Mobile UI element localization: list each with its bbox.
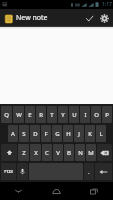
button[interactable]: L: [96, 125, 106, 142]
staticText: M: [88, 149, 94, 157]
button[interactable]: J: [74, 125, 84, 142]
button[interactable]: B: [64, 144, 74, 161]
button[interactable]: X: [30, 144, 41, 161]
button[interactable]: Z: [18, 144, 29, 161]
button[interactable]: R: [36, 106, 46, 123]
staticText: P: [105, 111, 109, 119]
staticText: F: [44, 130, 48, 138]
staticText: E: [28, 111, 32, 119]
staticText: ?123: [4, 169, 13, 174]
button[interactable]: Close keyboard: [0, 182, 37, 200]
staticText: K: [88, 130, 92, 138]
staticText: W: [16, 111, 22, 119]
button[interactable]: S: [19, 125, 29, 142]
staticText: R: [39, 111, 43, 119]
staticText: N: [78, 149, 83, 157]
button[interactable]: V: [53, 144, 63, 161]
button[interactable]: T: [47, 106, 57, 123]
button[interactable]: H: [63, 125, 73, 142]
button[interactable]: P: [102, 106, 112, 123]
staticText: Z: [22, 149, 26, 157]
staticText: L: [99, 130, 103, 138]
button[interactable]: E: [25, 106, 35, 123]
staticText: V: [56, 149, 60, 157]
staticText: G: [55, 130, 60, 138]
button[interactable]: ?123: [1, 163, 16, 180]
staticText: J: [78, 130, 80, 138]
button[interactable]: W: [13, 106, 24, 123]
button[interactable]: O: [91, 106, 101, 123]
staticText: Y: [61, 111, 65, 119]
button[interactable]: Y: [58, 106, 68, 123]
button[interactable]: G: [52, 125, 62, 142]
button[interactable]: C: [42, 144, 52, 161]
staticText: New note: [16, 13, 48, 23]
button[interactable]: A: [8, 125, 18, 142]
staticText: X: [34, 149, 38, 157]
button[interactable]: Save note: [81, 9, 97, 27]
button[interactable]: Delete: [97, 144, 112, 161]
button[interactable]: Shift: [1, 144, 17, 161]
button[interactable]: Settings: [97, 9, 112, 27]
button[interactable]: K: [85, 125, 95, 142]
button[interactable]: U: [69, 106, 79, 123]
staticText: Q: [4, 111, 9, 119]
staticText: I: [84, 111, 87, 119]
staticText: 1:17: [102, 1, 112, 8]
button[interactable]: M: [86, 144, 96, 161]
staticText: S: [22, 130, 26, 138]
staticText: U: [72, 111, 77, 119]
staticText: C: [45, 149, 49, 157]
button[interactable]: F: [41, 125, 51, 142]
button[interactable]: N: [75, 144, 85, 161]
button[interactable]: D: [30, 125, 40, 142]
staticText: D: [33, 130, 38, 138]
button[interactable]: Up: [2, 12, 15, 25]
staticText: T: [50, 111, 54, 119]
button[interactable]: .: [84, 163, 94, 180]
button[interactable]: I: [80, 106, 90, 123]
staticText: O: [94, 111, 99, 119]
button[interactable]: Home: [37, 182, 75, 200]
staticText: H: [66, 130, 71, 138]
staticText: B: [67, 149, 71, 157]
button[interactable]: Recent apps: [75, 182, 113, 200]
button[interactable]: Voice input: [17, 163, 28, 180]
staticText: A: [11, 130, 15, 138]
staticText: .: [88, 168, 90, 176]
button[interactable]: Enter: [95, 163, 112, 180]
button[interactable]: Q: [1, 106, 12, 123]
